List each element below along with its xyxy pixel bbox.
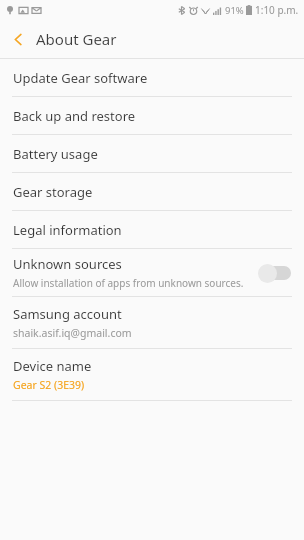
staticText: Gear storage	[13, 183, 93, 201]
staticText: Battery usage	[13, 145, 98, 163]
staticText: 91%	[225, 4, 244, 17]
button[interactable]: Unknown sources	[0, 249, 304, 296]
button[interactable]: Unknown sources switch, off	[258, 263, 292, 283]
button[interactable]: Gear storage	[0, 173, 304, 210]
staticText: 1:10 p.m.	[255, 3, 299, 17]
staticText: Samsung account	[13, 305, 122, 323]
staticText: shaik.asif.iq@gmail.com	[13, 326, 132, 340]
staticText: About Gear	[36, 29, 117, 49]
staticText: Unknown sources	[13, 255, 122, 273]
staticText: Update Gear software	[13, 69, 148, 87]
button[interactable]: Back	[0, 21, 36, 57]
staticText: Gear S2 (3E39)	[13, 378, 85, 392]
button[interactable]: Update Gear software	[0, 59, 304, 96]
staticText: Back up and restore	[13, 107, 136, 125]
staticText: Legal information	[13, 221, 122, 239]
button[interactable]: Device name	[0, 349, 304, 400]
button[interactable]: Back up and restore	[0, 97, 304, 134]
staticText: Allow installation of apps from unknown …	[13, 276, 244, 290]
button[interactable]: Legal information	[0, 211, 304, 248]
button[interactable]: Battery usage	[0, 135, 304, 172]
staticText: Device name	[13, 357, 92, 375]
button[interactable]: Samsung account	[0, 297, 304, 348]
